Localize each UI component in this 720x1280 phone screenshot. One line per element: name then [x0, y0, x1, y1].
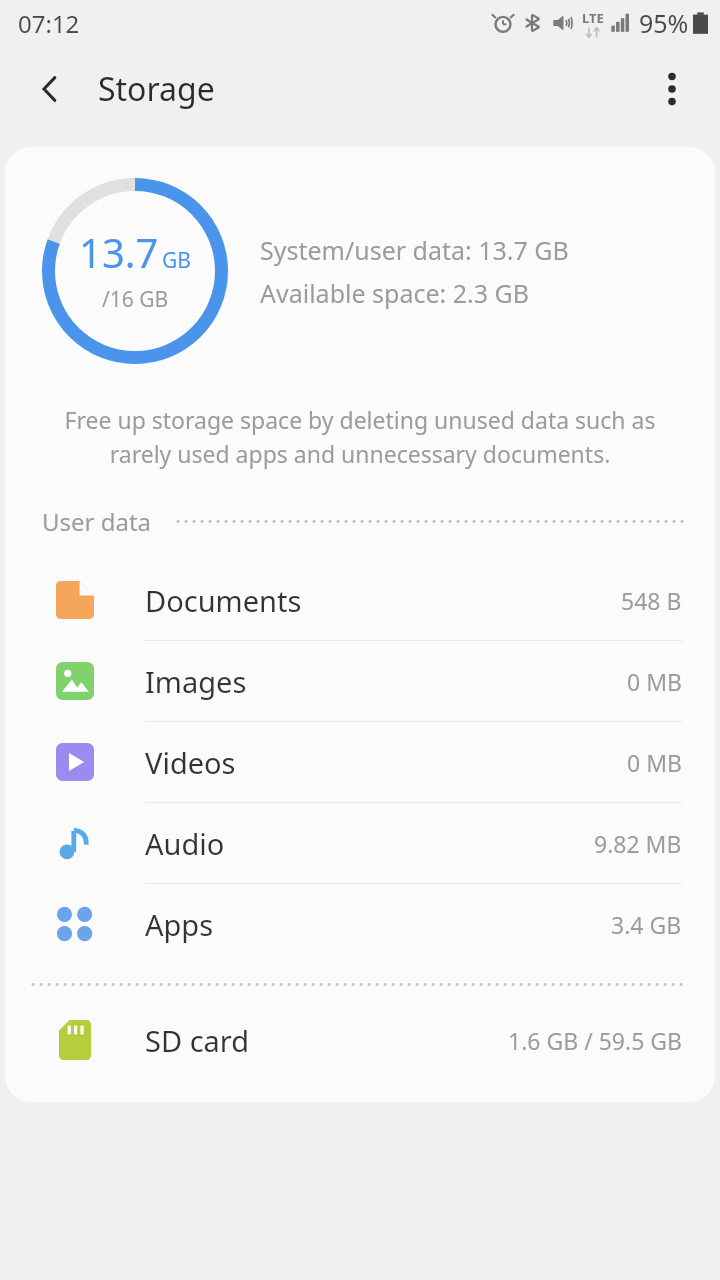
staticText: Apps — [145, 905, 214, 944]
staticText: Images — [145, 662, 247, 701]
button[interactable]: Back — [22, 61, 78, 117]
button[interactable]: Audio — [5, 803, 715, 884]
staticText: 3.4 GB — [611, 909, 682, 940]
staticText: Storage — [98, 67, 215, 111]
button[interactable]: Videos — [5, 722, 715, 803]
staticText: /16 GB — [102, 285, 169, 314]
staticText: 07:12 — [18, 7, 80, 40]
staticText: Videos — [145, 743, 236, 782]
staticText: LTE — [582, 9, 604, 27]
staticText: 9.82 MB — [594, 828, 682, 859]
staticText: System/user data: 13.7 GB — [260, 233, 569, 267]
staticText: SD card — [145, 1021, 250, 1060]
button[interactable]: More options — [644, 61, 700, 117]
staticText: Audio — [145, 824, 225, 863]
staticText: 1.6 GB / 59.5 GB — [508, 1025, 682, 1056]
staticText: Documents — [145, 581, 302, 620]
staticText: Free up storage space by deleting unused… — [35, 404, 685, 469]
button[interactable]: Documents — [5, 560, 715, 641]
staticText: 95% — [639, 6, 689, 40]
staticText: 13.7 — [79, 225, 159, 279]
staticText: Available space: 2.3 GB — [260, 276, 529, 310]
button[interactable]: Images — [5, 641, 715, 722]
staticText: 0 MB — [627, 747, 682, 778]
staticText: 0 MB — [627, 666, 682, 697]
button[interactable]: SD card — [5, 1000, 715, 1080]
staticText: 548 B — [621, 585, 682, 616]
staticText: GB — [162, 246, 191, 275]
staticText: User data — [42, 505, 152, 538]
button[interactable]: Apps — [5, 884, 715, 964]
